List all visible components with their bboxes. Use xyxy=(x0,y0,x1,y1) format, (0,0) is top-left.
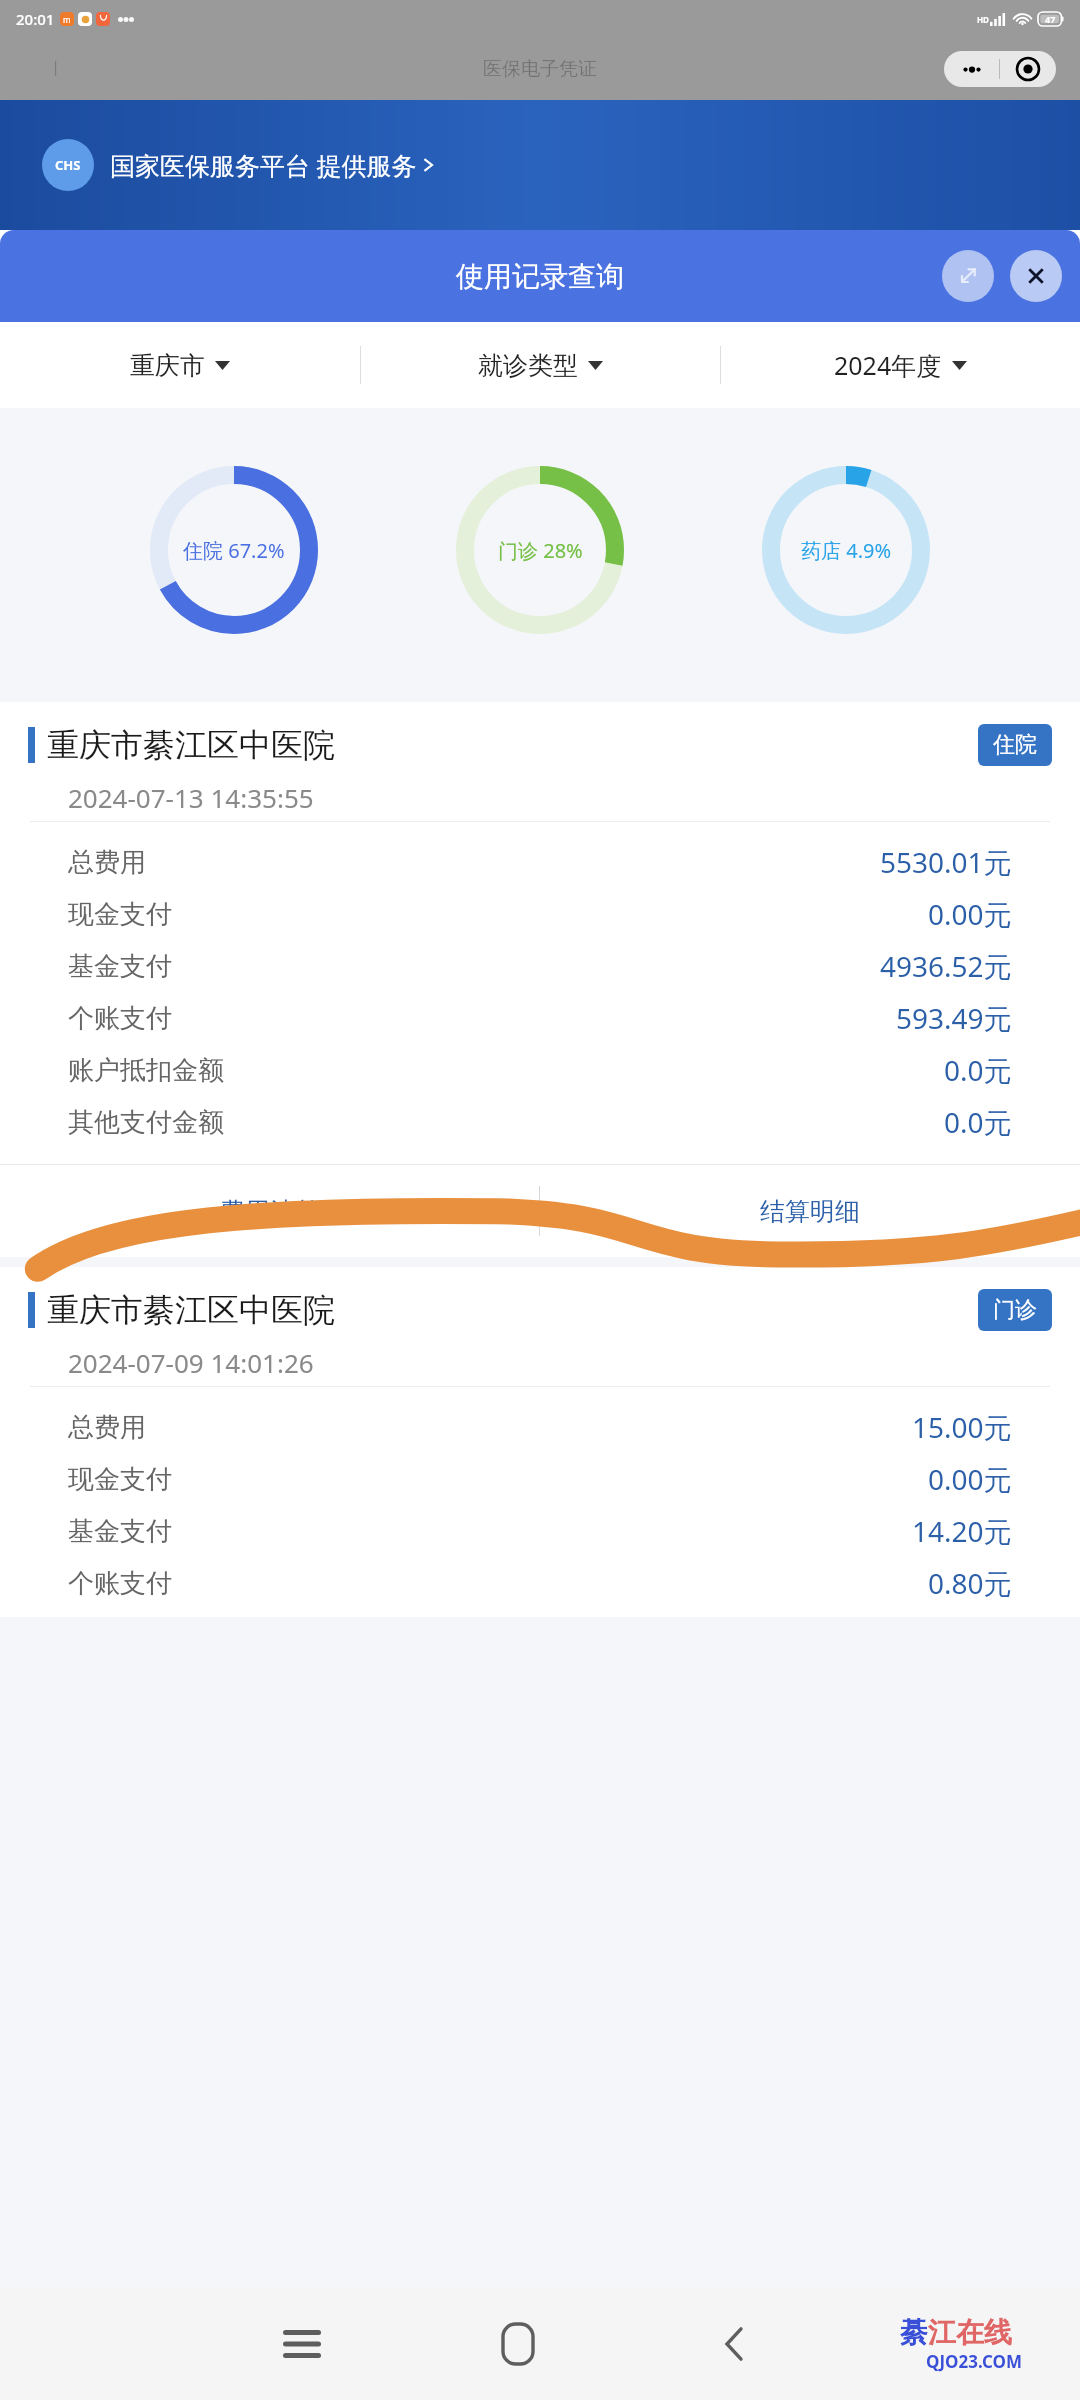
staticText: 15.00元 xyxy=(912,1408,1012,1446)
staticText: 使用记录查询 xyxy=(456,259,624,294)
staticText: 门诊 xyxy=(993,1296,1037,1324)
staticText: 基金支付 xyxy=(68,950,172,983)
button[interactable]: 重庆市綦江区中医院 xyxy=(28,1289,1052,1331)
button[interactable]: Close xyxy=(1010,250,1062,302)
button[interactable]: Recents xyxy=(194,2288,410,2400)
staticText: 就诊类型 xyxy=(478,350,578,381)
button[interactable]: CHS xyxy=(0,100,1080,230)
staticText: 住院 67.2% xyxy=(183,537,285,564)
button[interactable]: 重庆市綦江区中医院 xyxy=(28,724,1052,766)
staticText: 0.00元 xyxy=(928,1460,1012,1498)
staticText: 0.0元 xyxy=(944,1051,1012,1089)
staticText: 重庆市 xyxy=(130,350,205,381)
staticText: 0.00元 xyxy=(928,895,1012,933)
staticText: 国家医保服务平台 提供服务 xyxy=(110,148,417,182)
staticText: 总费用 xyxy=(68,1411,146,1444)
staticText: 医保电子凭证 xyxy=(483,57,597,81)
staticText: CHS xyxy=(55,156,81,174)
staticText: 593.49元 xyxy=(896,999,1012,1037)
staticText: 其他支付金额 xyxy=(68,1106,224,1139)
staticText: 丨 xyxy=(48,59,64,79)
staticText: 个账支付 xyxy=(68,1002,172,1035)
staticText: 2024-07-09 14:01:26 xyxy=(68,1345,314,1380)
staticText: 2024年度 xyxy=(834,348,942,382)
staticText: 药店 4.9% xyxy=(801,537,892,564)
button[interactable]: 结算明细 xyxy=(540,1165,1080,1257)
staticText: 重庆市綦江区中医院 xyxy=(47,725,335,765)
staticText: m xyxy=(63,14,71,25)
staticText: 住院 xyxy=(993,731,1037,759)
staticText: HD xyxy=(977,14,989,25)
staticText: 现金支付 xyxy=(68,898,172,931)
button[interactable]: 重庆市 xyxy=(0,322,360,408)
staticText: 47 xyxy=(1045,13,1056,25)
staticText: QJO23.COM xyxy=(926,2350,1022,2373)
staticText: 江在线 xyxy=(928,2315,1012,2350)
staticText: 4936.52元 xyxy=(880,947,1012,985)
button[interactable]: 就诊类型 xyxy=(361,322,720,408)
staticText: 个账支付 xyxy=(68,1567,172,1600)
staticText: 现金支付 xyxy=(68,1463,172,1496)
staticText: 总费用 xyxy=(68,846,146,879)
button[interactable]: Expand xyxy=(942,250,994,302)
staticText: 基金支付 xyxy=(68,1515,172,1548)
staticText: 2024-07-13 14:35:55 xyxy=(68,780,314,815)
staticText: 綦 xyxy=(900,2315,928,2350)
staticText: 结算明细 xyxy=(760,1196,860,1227)
button[interactable]: 2024年度 xyxy=(721,322,1080,408)
staticText: 重庆市綦江区中医院 xyxy=(47,1290,335,1330)
staticText: 0.80元 xyxy=(928,1564,1012,1602)
staticText: 费用清单 xyxy=(220,1196,320,1227)
staticText: 0.0元 xyxy=(944,1103,1012,1141)
button[interactable]: Home xyxy=(410,2288,626,2400)
staticText: 门诊 28% xyxy=(498,537,583,564)
button[interactable]: More and close xyxy=(944,51,1056,87)
staticText: 20:01 xyxy=(16,9,55,29)
staticText: 5530.01元 xyxy=(880,843,1012,881)
staticText: 14.20元 xyxy=(912,1512,1012,1550)
button[interactable]: Back xyxy=(626,2288,842,2400)
staticText: 账户抵扣金额 xyxy=(68,1054,224,1087)
button[interactable]: 费用清单 xyxy=(0,1165,539,1257)
